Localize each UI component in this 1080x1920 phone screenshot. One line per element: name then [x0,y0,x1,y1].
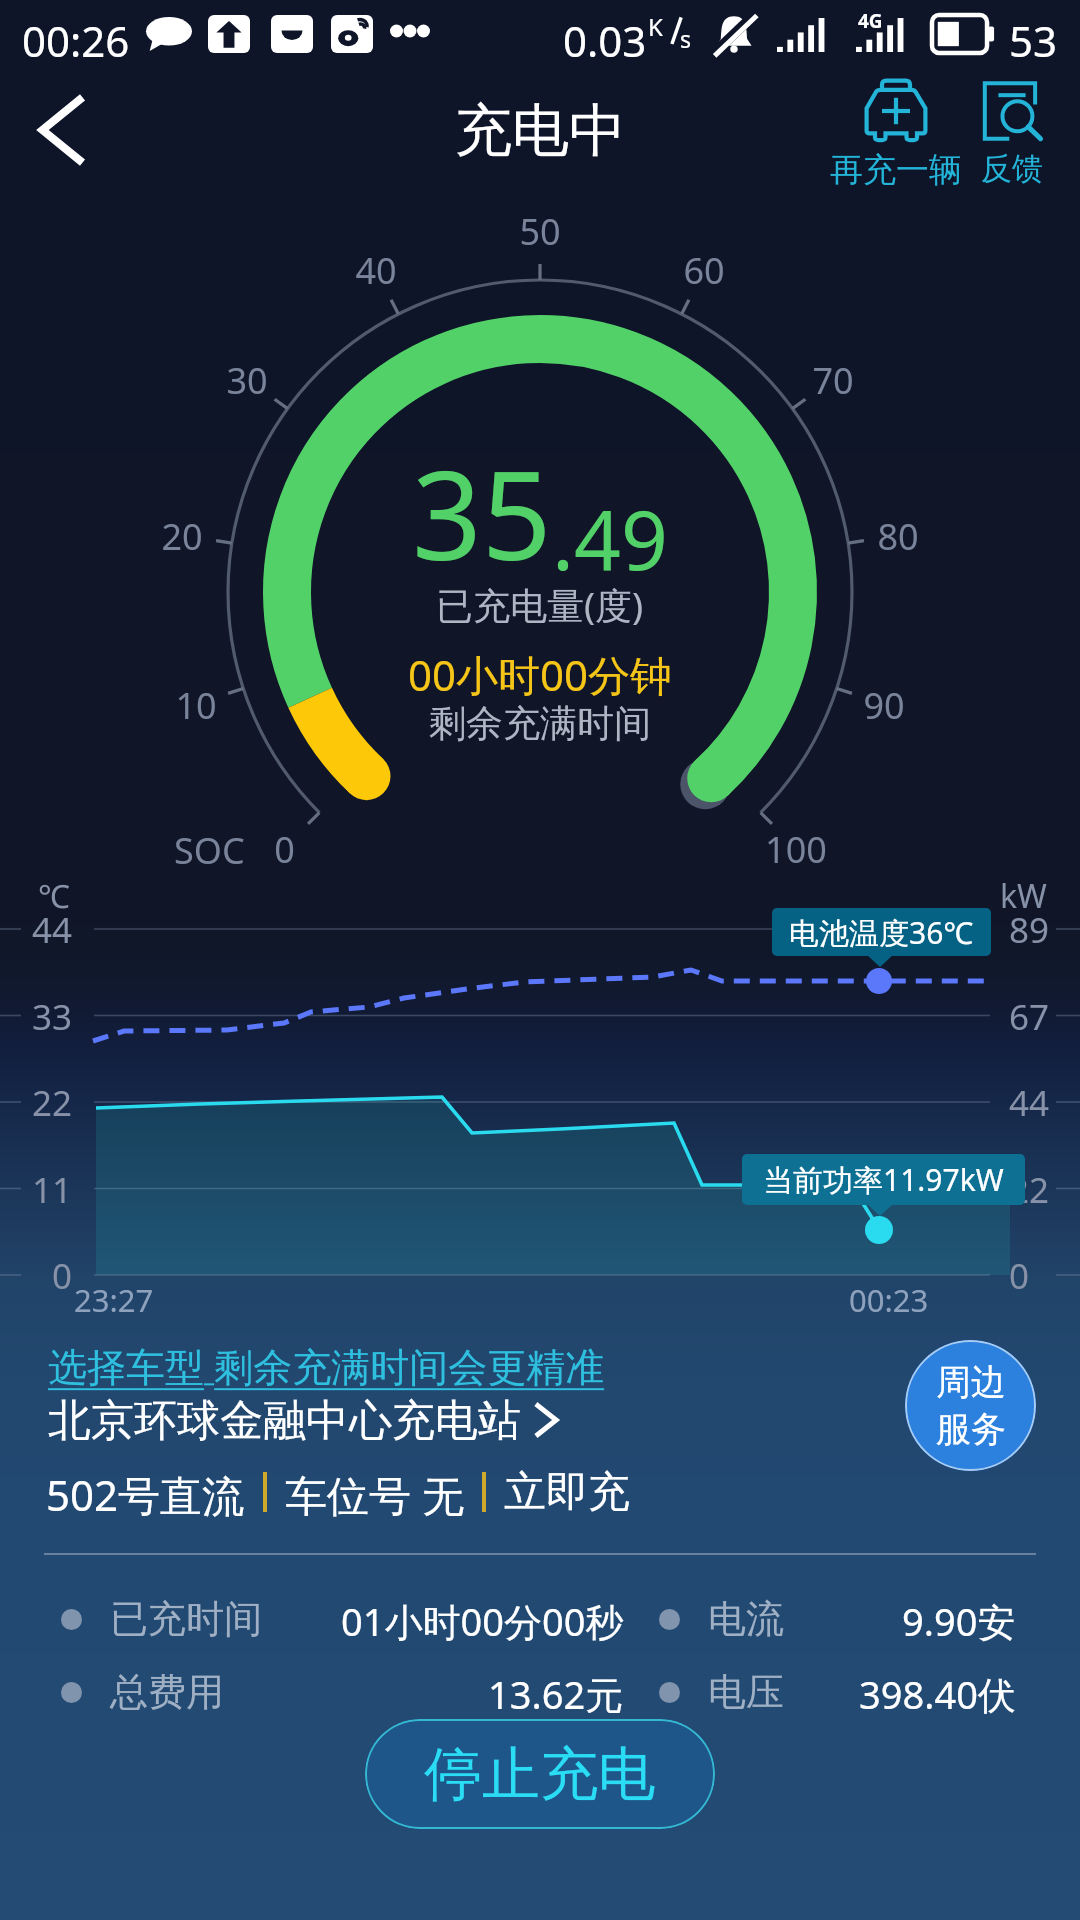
staticText: 80 [877,512,919,558]
staticText: 当前功率11.97kW [763,1159,1004,1200]
staticText: 30 [226,356,268,402]
staticText: 22 [1009,1166,1050,1212]
staticText: 已充时间 [110,1595,262,1643]
staticText: 4G [858,8,883,34]
staticText: 44 [1009,1079,1050,1125]
button[interactable]: 反馈 [963,78,1061,192]
button[interactable]: 北京环球金融中心充电站 [48,1394,559,1446]
staticText: 13.62元 [488,1668,624,1716]
staticText: 40 [355,246,397,292]
staticText: 20 [161,512,203,558]
staticText: 再充一辆 [830,149,962,191]
button[interactable]: 周边 [905,1340,1036,1471]
staticText: 01小时00分00秒 [341,1595,624,1643]
staticText: 67 [1009,993,1050,1039]
staticText: 选择车型 剩余充满时间会更精准 [48,1339,605,1392]
staticText: 00:23 [849,1279,929,1321]
staticText: 35 [412,430,552,596]
staticText: 北京环球金融中心充电站 [48,1394,521,1446]
staticText: 已充电量(度) [436,579,644,630]
staticText: ℃ [38,874,70,918]
staticText: 60 [683,246,725,292]
button[interactable]: 停止充电 [365,1719,715,1829]
button[interactable]: 再充一辆 [828,78,964,192]
staticText: 23:27 [74,1279,154,1321]
staticText: 22 [32,1079,73,1125]
staticText: s [680,23,692,54]
staticText: 0 [1009,1252,1030,1298]
button[interactable]: 选择车型 剩余充满时间会更精准 [48,1339,605,1392]
staticText: 00:26 [22,12,130,69]
staticText: 70 [812,356,854,402]
staticText: 100 [765,825,827,871]
staticText: 0 [274,825,295,871]
staticText: 电流 [708,1595,784,1643]
staticText: 车位号 无 [285,1466,464,1518]
staticText: 剩余充满时间 [429,700,651,747]
staticText: 电池温度36℃ [789,912,974,953]
staticText: 停止充电 [424,1738,656,1811]
staticText: 33 [32,993,73,1039]
staticText: 0 [52,1252,73,1298]
staticText: 50 [519,207,561,253]
staticText: 周边 [936,1360,1006,1404]
staticText: K [648,10,663,43]
staticText: .49 [552,482,668,594]
staticText: 0.03 [563,12,647,69]
button[interactable]: Back [10,80,110,180]
staticText: 反馈 [981,149,1043,188]
staticText: 11 [32,1166,73,1212]
staticText: 服务 [936,1407,1006,1451]
staticText: 充电中 [455,95,626,167]
staticText: 90 [863,681,905,727]
staticText: kW [1000,874,1047,918]
staticText: 502号直流 [46,1466,245,1518]
staticText: 89 [1009,906,1050,952]
staticText: 立即充 [504,1466,630,1518]
staticText: 44 [32,906,73,952]
staticText: 00小时00分钟 [408,646,673,703]
staticText: 电压 [708,1668,784,1716]
staticText: 总费用 [110,1668,224,1716]
staticText: 398.40伏 [859,1668,1016,1716]
staticText: SOC [174,826,245,875]
staticText: 10 [175,681,217,727]
staticText: 53 [1009,12,1058,69]
staticText: 9.90安 [902,1595,1016,1643]
